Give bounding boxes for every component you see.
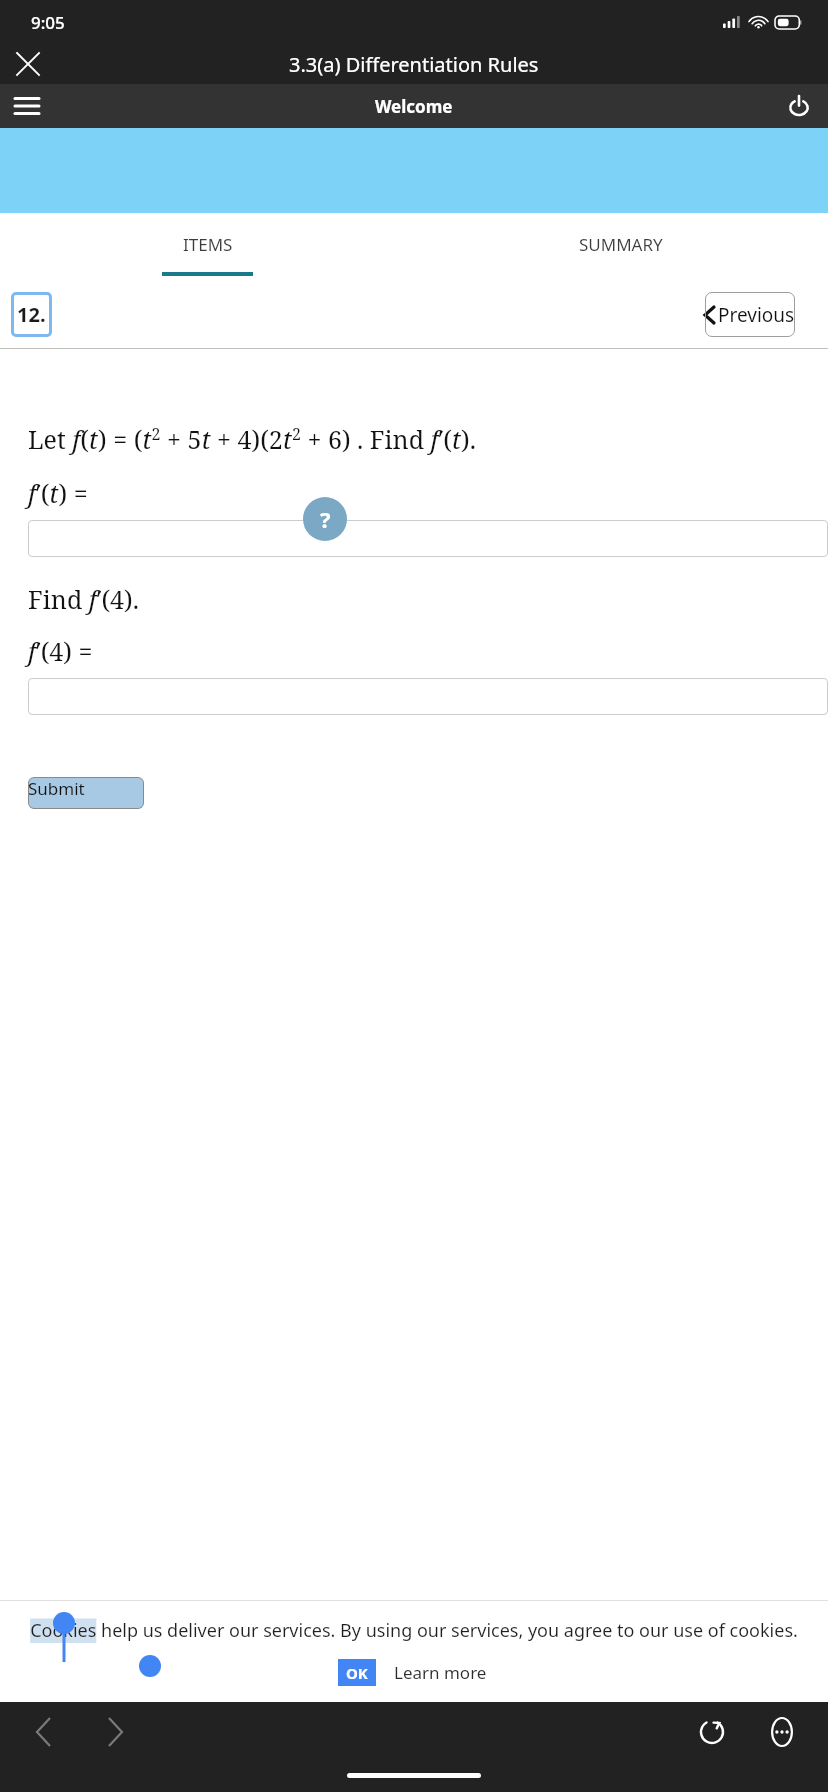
button[interactable]: Back <box>20 1709 66 1755</box>
button[interactable] <box>28 678 828 715</box>
staticText: OK <box>346 1663 368 1683</box>
staticText: f′(t) = <box>28 476 88 510</box>
button[interactable]: More options <box>756 1706 808 1758</box>
button[interactable]: Learn more <box>390 1657 491 1688</box>
staticText: Cookies help us deliver our services. By… <box>30 1618 798 1643</box>
staticText: Submit answer <box>28 777 144 809</box>
staticText: Learn more <box>394 1661 487 1684</box>
staticText: Find f′(4). <box>28 582 139 616</box>
button[interactable]: Help <box>303 497 347 541</box>
button[interactable]: ITEMS <box>0 213 414 280</box>
staticText: 9:05 <box>31 11 65 34</box>
button[interactable]: Submit answer <box>28 777 144 809</box>
button[interactable]: Forward <box>92 1709 138 1755</box>
button[interactable]: OK <box>338 1659 376 1686</box>
button[interactable]: Reload <box>686 1706 738 1758</box>
staticText: ITEMS <box>183 233 233 256</box>
button[interactable]: Log out <box>778 85 820 127</box>
staticText: Welcome <box>375 95 453 118</box>
staticText: ? <box>320 504 331 534</box>
staticText: f′(4) = <box>28 634 93 668</box>
staticText: 3.3(a) Differentiation Rules <box>289 51 539 78</box>
staticText: Previous <box>718 302 795 328</box>
button[interactable]: 12. <box>11 292 52 337</box>
button[interactable]: Previous <box>705 292 795 337</box>
button[interactable] <box>28 520 828 557</box>
staticText: Let f(t) = (t2 + 5t + 4)(2t2 + 6) . Find… <box>28 422 476 456</box>
staticText: 12. <box>17 301 46 328</box>
button[interactable]: Menu <box>6 85 48 127</box>
staticText: SUMMARY <box>579 233 663 256</box>
button[interactable]: Close <box>8 44 48 84</box>
button[interactable]: SUMMARY <box>414 213 828 280</box>
